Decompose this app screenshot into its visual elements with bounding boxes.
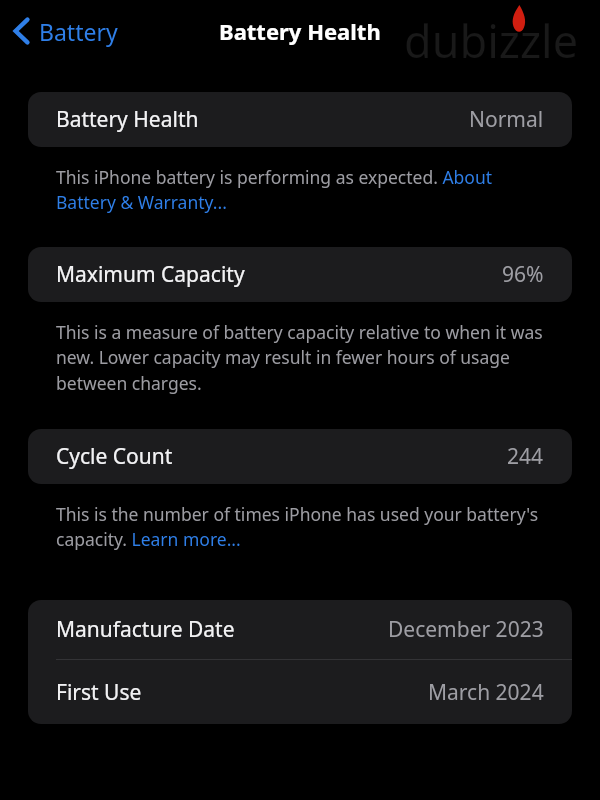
- staticText: 96%: [502, 260, 544, 289]
- staticText: Battery: [39, 16, 118, 47]
- staticText: Battery Health: [56, 105, 199, 134]
- staticText: Battery Health: [219, 16, 381, 46]
- staticText: This is a measure of battery capacity re…: [56, 320, 550, 396]
- staticText: March 2024: [428, 678, 544, 707]
- staticText: First Use: [56, 678, 142, 707]
- staticText: Normal: [469, 105, 544, 134]
- staticText: December 2023: [388, 615, 544, 644]
- staticText: This is the number of times iPhone has u…: [56, 502, 550, 552]
- button[interactable]: Maximum Capacity: [28, 247, 572, 302]
- button[interactable]: Battery Health: [28, 92, 572, 147]
- staticText: Manufacture Date: [56, 615, 235, 644]
- button[interactable]: First Use: [28, 660, 572, 724]
- staticText: Cycle Count: [56, 442, 173, 471]
- staticText: dubizzle: [404, 10, 579, 68]
- staticText: 244: [507, 442, 544, 471]
- staticText: This iPhone battery is performing as exp…: [56, 165, 550, 215]
- staticText: Maximum Capacity: [56, 260, 245, 289]
- button[interactable]: Cycle Count: [28, 429, 572, 484]
- button[interactable]: Manufacture Date: [28, 600, 572, 659]
- button[interactable]: Back to Battery: [0, 8, 128, 54]
